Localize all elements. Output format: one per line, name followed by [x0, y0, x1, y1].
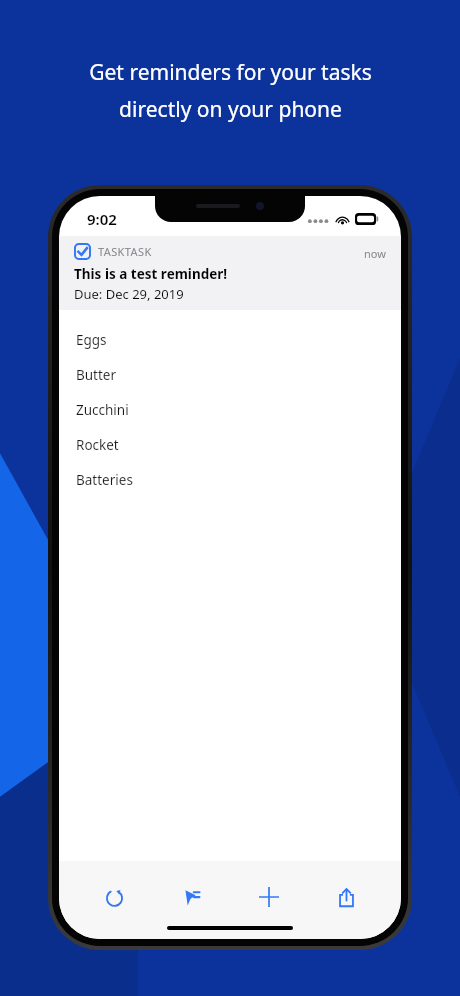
- button[interactable]: Zucchini: [59, 392, 401, 427]
- button[interactable]: Batteries: [59, 462, 401, 497]
- staticText: Zucchini: [76, 401, 129, 419]
- button[interactable]: Rocket: [59, 427, 401, 462]
- staticText: directly on your phone: [119, 95, 342, 124]
- staticText: Eggs: [76, 331, 107, 349]
- staticText: Rocket: [76, 436, 119, 454]
- staticText: Get reminders for your tasks: [89, 58, 372, 87]
- staticText: Batteries: [76, 471, 133, 489]
- button[interactable]: Butter: [59, 357, 401, 392]
- staticText: This is a test reminder!: [74, 265, 228, 283]
- staticText: Butter: [76, 366, 117, 384]
- button[interactable]: Sort: [169, 875, 213, 919]
- staticText: 9:02: [87, 209, 117, 229]
- button[interactable]: Add: [247, 875, 291, 919]
- button[interactable]: Share: [324, 875, 368, 919]
- staticText: now: [364, 246, 386, 261]
- staticText: TASKTASK: [98, 244, 152, 259]
- staticText: Due: Dec 29, 2019: [74, 285, 184, 303]
- button[interactable]: Eggs: [59, 322, 401, 357]
- button[interactable]: TASKTASK: [59, 236, 401, 310]
- button[interactable]: Refresh: [92, 875, 136, 919]
